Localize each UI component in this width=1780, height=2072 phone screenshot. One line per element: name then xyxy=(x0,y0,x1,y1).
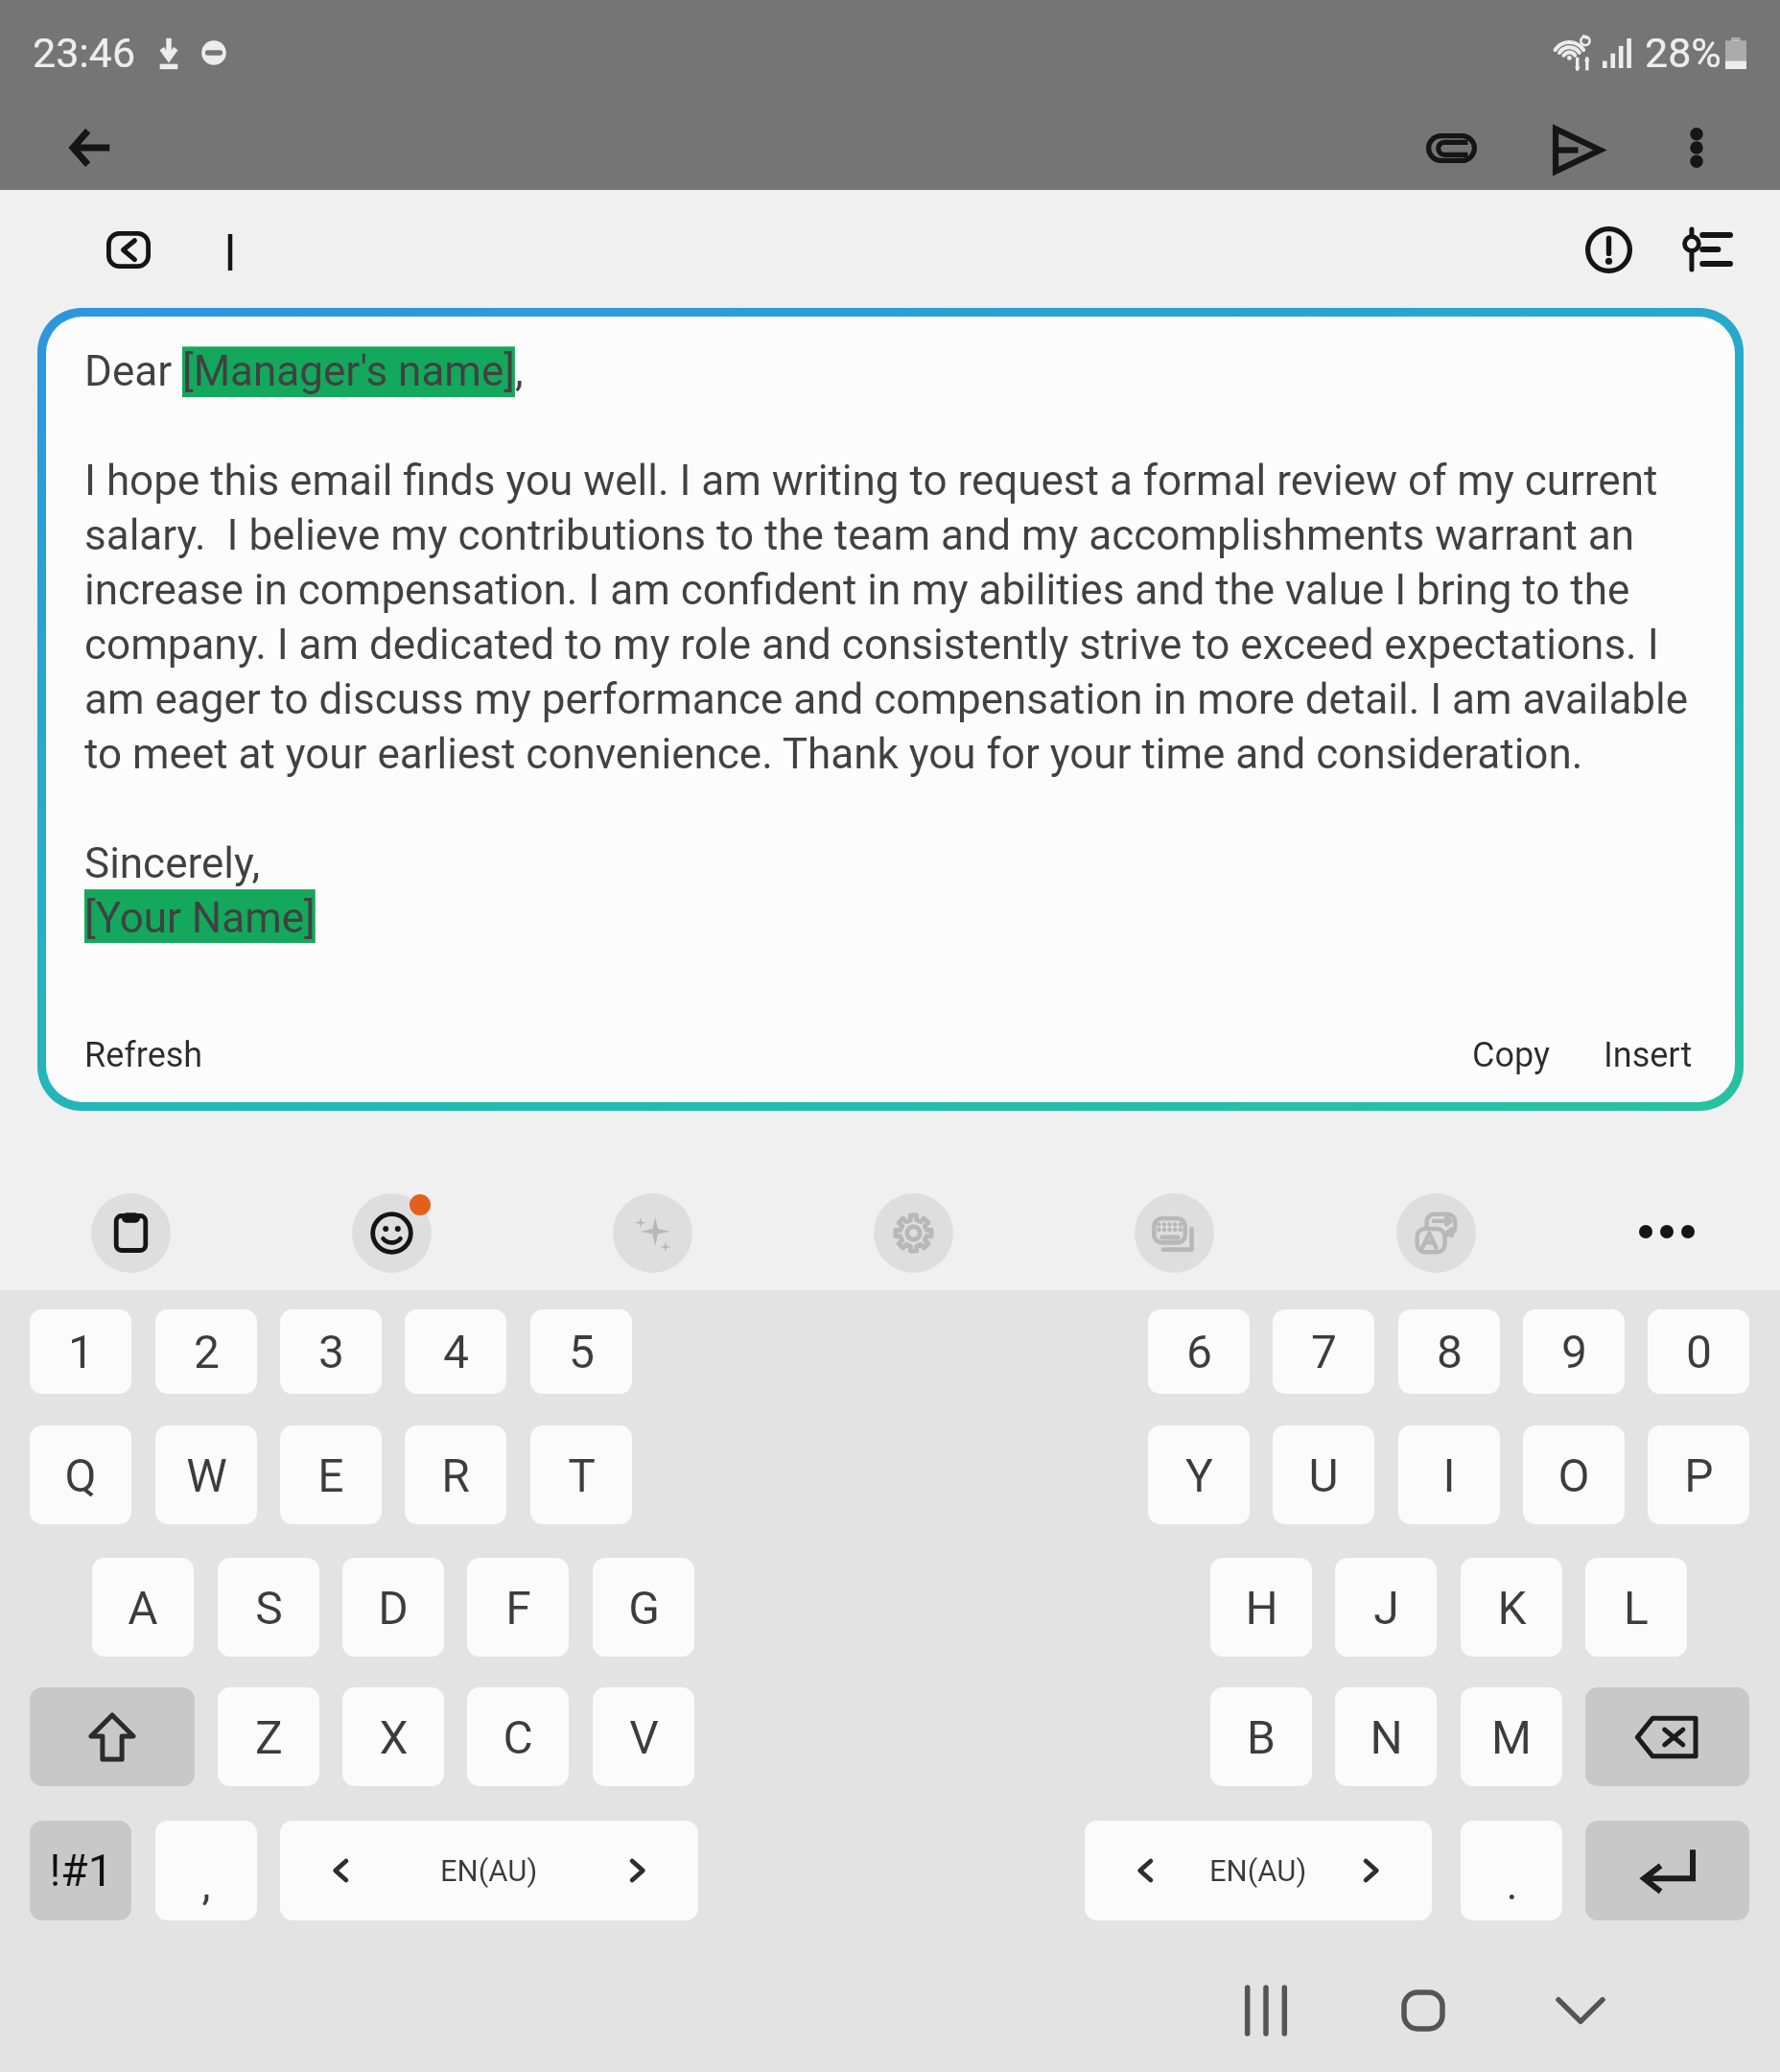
button[interactable]: Show recipients xyxy=(75,201,182,297)
button[interactable]: S xyxy=(218,1558,319,1657)
button[interactable]: !#1 xyxy=(30,1821,131,1920)
staticText: E xyxy=(317,1448,344,1502)
button[interactable]: More options xyxy=(1634,115,1759,180)
button[interactable]: 9 xyxy=(1523,1309,1625,1394)
button[interactable]: , xyxy=(155,1821,257,1920)
button[interactable]: H xyxy=(1210,1558,1312,1657)
button[interactable]: Priority xyxy=(1556,200,1661,299)
staticText: Z xyxy=(255,1710,283,1764)
button[interactable]: L xyxy=(1585,1558,1687,1657)
button[interactable]: A xyxy=(92,1558,194,1657)
staticText: B xyxy=(1247,1710,1276,1764)
button[interactable]: V xyxy=(593,1687,694,1786)
staticText: EN(AU) xyxy=(440,1853,538,1888)
button[interactable]: More keyboard options xyxy=(1617,1188,1717,1276)
button[interactable]: Y xyxy=(1148,1425,1250,1524)
button[interactable]: Q xyxy=(30,1425,131,1524)
button[interactable]: C xyxy=(467,1687,569,1786)
button[interactable]: R xyxy=(405,1425,506,1524)
button[interactable]: P xyxy=(1648,1425,1749,1524)
button[interactable]: 1 xyxy=(30,1309,131,1394)
staticText: S xyxy=(255,1581,283,1635)
button[interactable]: F xyxy=(467,1558,569,1657)
staticText: Copy xyxy=(1472,1035,1551,1075)
button[interactable]: Keyboard modes xyxy=(1135,1193,1214,1273)
staticText: Q xyxy=(64,1448,97,1502)
button[interactable]: J xyxy=(1335,1558,1437,1657)
button[interactable]: Space, EN(AU) xyxy=(1085,1821,1432,1920)
button[interactable]: Refresh xyxy=(84,1025,203,1085)
button[interactable]: Space, EN(AU) xyxy=(280,1821,698,1920)
staticText: 0 xyxy=(1686,1325,1712,1378)
staticText: 5 xyxy=(569,1325,595,1378)
button[interactable]: Recents xyxy=(1205,1949,1327,2072)
button[interactable]: X xyxy=(342,1687,444,1786)
button[interactable]: B xyxy=(1210,1687,1312,1786)
staticText: Y xyxy=(1185,1448,1213,1502)
button[interactable]: O xyxy=(1523,1425,1625,1524)
button[interactable]: Home xyxy=(1362,1949,1485,2072)
button[interactable]: I xyxy=(1398,1425,1500,1524)
staticText: 6 xyxy=(1186,1325,1212,1378)
staticText: 3 xyxy=(318,1325,344,1378)
button[interactable]: N xyxy=(1335,1687,1437,1786)
button[interactable]: Attach xyxy=(1389,115,1513,180)
button[interactable]: Z xyxy=(218,1687,319,1786)
staticText: 23:46 xyxy=(33,29,136,77)
button[interactable]: AI writing assist xyxy=(613,1193,692,1273)
staticText: L xyxy=(1624,1581,1649,1635)
staticText: EN(AU) xyxy=(1209,1853,1307,1888)
button[interactable]: 2 xyxy=(155,1309,257,1394)
button[interactable]: Back xyxy=(29,115,153,180)
button[interactable]: Shift xyxy=(30,1687,195,1786)
staticText: Dear [Manager's name], I hope this email… xyxy=(84,346,1735,943)
button[interactable]: . xyxy=(1461,1821,1562,1920)
staticText: , xyxy=(201,1858,211,1910)
button[interactable]: 3 xyxy=(280,1309,382,1394)
button[interactable]: Emoji xyxy=(352,1193,432,1273)
button[interactable]: U xyxy=(1273,1425,1374,1524)
button[interactable]: 7 xyxy=(1273,1309,1374,1394)
button[interactable]: Copy xyxy=(1472,1025,1551,1085)
button[interactable]: T xyxy=(530,1425,632,1524)
button[interactable]: W xyxy=(155,1425,257,1524)
staticText: J xyxy=(1373,1581,1399,1635)
staticText: 7 xyxy=(1311,1325,1337,1378)
button[interactable]: Hide keyboard xyxy=(1519,1949,1642,2072)
staticText: 8 xyxy=(1437,1325,1463,1378)
button[interactable]: 8 xyxy=(1398,1309,1500,1394)
button[interactable]: Send xyxy=(1514,117,1639,182)
button[interactable]: M xyxy=(1461,1687,1562,1786)
button[interactable]: Keyboard settings xyxy=(874,1193,953,1273)
button[interactable]: Clipboard xyxy=(91,1193,171,1273)
staticText: 4 xyxy=(443,1325,469,1378)
button[interactable]: Translate xyxy=(1396,1193,1476,1273)
button[interactable]: Text formatting xyxy=(1655,200,1761,299)
staticText: G xyxy=(628,1581,660,1635)
button[interactable]: Dear [Manager's name], I hope this email… xyxy=(46,317,1735,1102)
staticText: . xyxy=(1506,1858,1518,1910)
staticText: 9 xyxy=(1561,1325,1587,1378)
staticText: H xyxy=(1245,1581,1278,1635)
staticText: C xyxy=(503,1710,533,1764)
button[interactable]: 0 xyxy=(1648,1309,1749,1394)
staticText: T xyxy=(568,1448,596,1502)
button[interactable]: 5 xyxy=(530,1309,632,1394)
button[interactable]: D xyxy=(342,1558,444,1657)
staticText: 1 xyxy=(68,1325,94,1378)
button[interactable]: Enter xyxy=(1585,1821,1749,1920)
button[interactable]: Insert xyxy=(1604,1025,1693,1085)
button[interactable]: Backspace xyxy=(1585,1687,1749,1786)
staticText: I xyxy=(1442,1448,1456,1502)
staticText: 28% xyxy=(1645,29,1721,77)
button[interactable]: E xyxy=(280,1425,382,1524)
staticText: M xyxy=(1491,1710,1532,1764)
button[interactable]: K xyxy=(1461,1558,1562,1657)
staticText: Refresh xyxy=(84,1035,203,1075)
button[interactable]: G xyxy=(593,1558,694,1657)
button[interactable]: 4 xyxy=(405,1309,506,1394)
staticText: R xyxy=(441,1448,470,1502)
staticText: Insert xyxy=(1604,1035,1693,1075)
staticText: P xyxy=(1684,1448,1714,1502)
button[interactable]: 6 xyxy=(1148,1309,1250,1394)
